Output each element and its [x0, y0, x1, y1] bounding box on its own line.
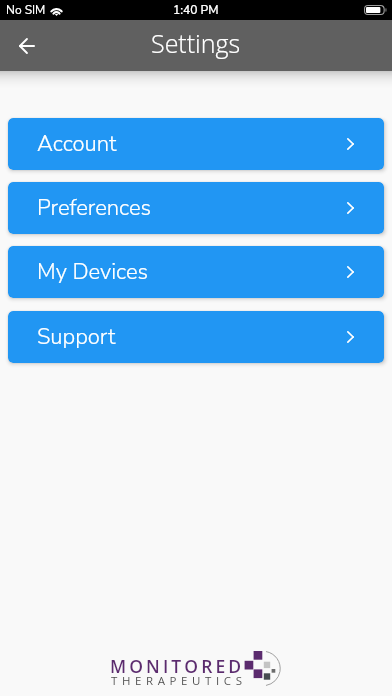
staticText: Settings — [151, 26, 241, 60]
staticText: No SIM — [6, 2, 46, 18]
button[interactable]: Support — [8, 311, 384, 363]
staticText: 1:40 PM — [173, 2, 219, 18]
button[interactable]: Back — [3, 22, 51, 70]
staticText: Account — [37, 129, 117, 159]
button[interactable]: My Devices — [8, 246, 384, 298]
staticText: Support — [37, 322, 116, 352]
staticText: THERAPEUTICS — [111, 673, 247, 689]
staticText: Preferences — [37, 193, 152, 223]
button[interactable]: Account — [8, 118, 384, 170]
button[interactable]: Preferences — [8, 182, 384, 234]
staticText: My Devices — [37, 257, 149, 287]
staticText: MONITORED — [110, 654, 245, 678]
